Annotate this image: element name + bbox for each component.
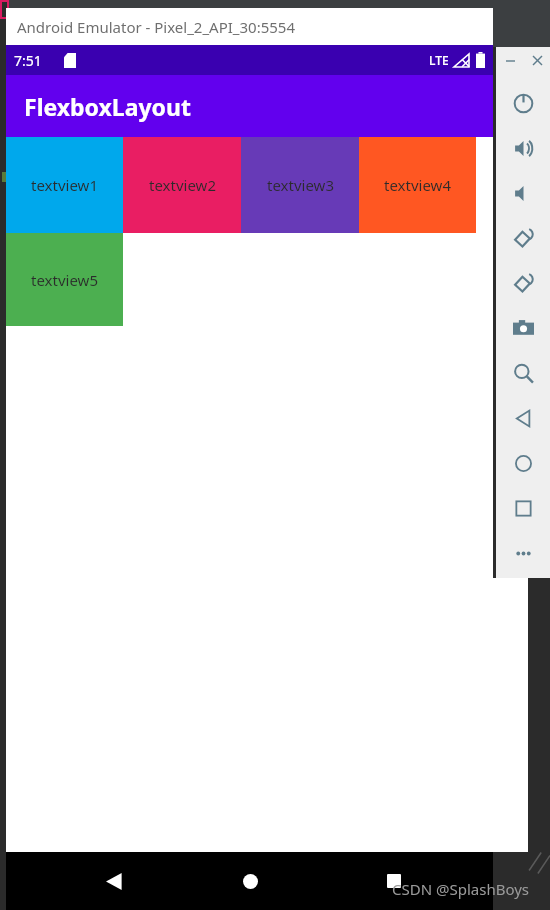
button[interactable]: textview5 bbox=[6, 233, 123, 326]
staticText: FlexboxLayout bbox=[24, 91, 191, 122]
button[interactable]: Volume down bbox=[496, 171, 550, 216]
button[interactable]: Overview bbox=[496, 486, 550, 531]
staticText: textview1 bbox=[31, 175, 98, 195]
button[interactable]: Volume up bbox=[496, 126, 550, 171]
staticText: 7:51 bbox=[14, 51, 42, 70]
staticText: textview4 bbox=[384, 175, 451, 195]
staticText: textview3 bbox=[267, 175, 334, 195]
button[interactable]: Minimize bbox=[496, 47, 525, 74]
staticText: CSDN @SplashBoys bbox=[392, 879, 530, 899]
button[interactable]: Close bbox=[525, 47, 550, 74]
button[interactable]: Take screenshot bbox=[496, 306, 550, 351]
button[interactable]: FlexboxLayout bbox=[6, 75, 493, 137]
button[interactable]: Back bbox=[92, 859, 136, 903]
button[interactable]: Back bbox=[496, 396, 550, 441]
button[interactable]: Home bbox=[228, 859, 272, 903]
button[interactable]: Rotate right bbox=[496, 261, 550, 306]
staticText: textview2 bbox=[149, 175, 216, 195]
staticText: textview5 bbox=[31, 270, 98, 290]
button[interactable]: More bbox=[496, 531, 550, 576]
button[interactable]: textview3 bbox=[241, 137, 359, 233]
button[interactable]: Home bbox=[496, 441, 550, 486]
button[interactable]: Recent apps bbox=[372, 859, 416, 903]
button[interactable]: textview1 bbox=[6, 137, 123, 233]
button[interactable]: Power bbox=[496, 81, 550, 126]
button[interactable]: Zoom bbox=[496, 351, 550, 396]
staticText: Android Emulator - Pixel_2_API_30:5554 bbox=[17, 17, 295, 37]
staticText: LTE bbox=[429, 52, 449, 68]
button[interactable]: textview4 bbox=[359, 137, 476, 233]
button[interactable]: Rotate left bbox=[496, 216, 550, 261]
button[interactable]: textview2 bbox=[123, 137, 241, 233]
